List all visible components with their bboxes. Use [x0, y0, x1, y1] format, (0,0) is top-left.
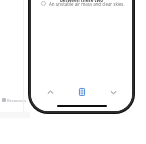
button[interactable]: Question list — [73, 83, 91, 101]
button[interactable]: Previous question — [41, 83, 59, 101]
button[interactable]: An unstable air mass and clear skies. — [31, 0, 132, 9]
staticText: between these two — [60, 0, 104, 3]
staticText: An unstable air mass and clear skies. — [49, 1, 125, 7]
button[interactable]: Next question — [104, 83, 122, 101]
staticText: Resources — [7, 98, 27, 103]
